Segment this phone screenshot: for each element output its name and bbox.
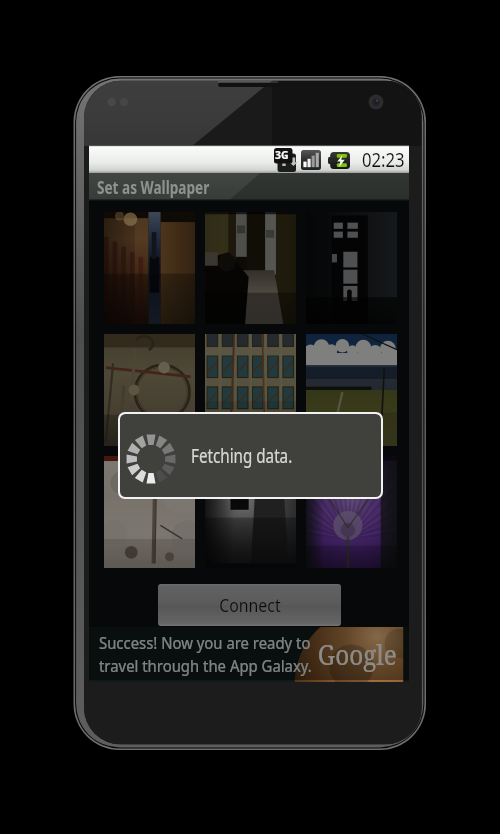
button[interactable]: Wallpaper 1 bbox=[104, 212, 195, 324]
button[interactable]: Wallpaper 6 bbox=[306, 334, 397, 446]
staticText: Fetching data. bbox=[191, 443, 293, 469]
staticText: Google bbox=[318, 636, 397, 673]
button[interactable]: Wallpaper 5 bbox=[205, 334, 296, 446]
staticText: 02:23 bbox=[362, 147, 405, 173]
staticText: Connect bbox=[219, 593, 281, 618]
button[interactable]: Wallpaper 4 bbox=[104, 334, 195, 446]
staticText: travel through the App Galaxy. bbox=[99, 655, 312, 677]
staticText: 3G bbox=[275, 148, 289, 161]
button[interactable]: Connect bbox=[158, 584, 341, 626]
staticText: Set as Wallpaper bbox=[97, 176, 210, 199]
button[interactable]: Wallpaper 2 bbox=[205, 212, 296, 324]
button[interactable]: Success! Now you are ready to bbox=[89, 627, 409, 682]
button[interactable]: Wallpaper 3 bbox=[306, 212, 397, 324]
button[interactable]: Wallpaper 9 bbox=[306, 456, 397, 568]
staticText: Success! Now you are ready to bbox=[99, 632, 311, 654]
button[interactable]: Wallpaper 8 bbox=[205, 456, 296, 568]
button[interactable]: Wallpaper 7 bbox=[104, 456, 195, 568]
